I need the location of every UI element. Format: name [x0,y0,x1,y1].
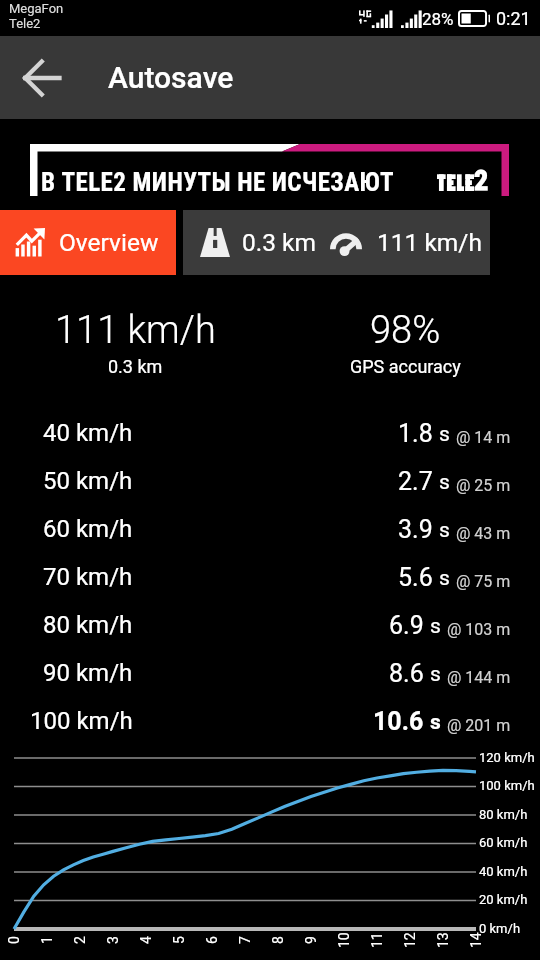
staticText: 100 km/h [479,778,535,793]
staticText: 70 km/h [43,563,133,591]
button[interactable]: 80 km/h [0,601,540,649]
button[interactable]: Back [10,46,74,110]
staticText: 9 [303,936,319,944]
staticText: 8.6 [389,659,424,688]
staticText: В TELE2 МИНУТЫ НЕ ИСЧЕЗАЮТ [41,168,395,197]
staticText: 28% [422,9,454,29]
button[interactable]: 40 km/h [0,409,540,457]
staticText: 12 [402,932,418,948]
staticText: 0.3 km [108,356,163,377]
staticText: s [439,518,450,543]
staticText: 0:21 [496,8,531,29]
button[interactable]: 50 km/h [0,457,540,505]
staticText: 2 [474,164,489,197]
staticText: 2 [72,936,88,944]
staticText: 0.3 km [242,228,316,257]
staticText: @ 103 m [447,620,511,639]
staticText: @ 75 m [456,572,511,591]
staticText: s [439,470,450,495]
staticText: 111 km/h [377,228,482,257]
staticText: 7 [237,936,253,944]
staticText: 0 [6,936,22,944]
staticText: Tele2 [9,16,41,31]
staticText: @ 144 m [447,668,511,687]
staticText: 11 [369,932,385,948]
staticText: s [439,422,450,447]
staticText: 90 km/h [43,659,133,687]
staticText: 6 [204,936,220,944]
staticText: MegaFon [9,1,64,16]
staticText: 120 km/h [479,750,535,765]
staticText: 100 km/h [30,707,133,735]
staticText: s [439,566,450,591]
staticText: 3.9 [398,515,433,544]
button[interactable]: В TELE2 МИНУТЫ НЕ ИСЧЕЗАЮТ [0,119,540,210]
button[interactable]: 90 km/h [0,649,540,697]
staticText: @ 43 m [456,524,511,543]
staticText: Overview [59,228,159,257]
staticText: GPS accuracy [350,356,461,377]
staticText: 4 [138,936,154,944]
button[interactable]: Overview [0,210,176,275]
staticText: 2.7 [398,467,433,496]
staticText: 80 km/h [43,611,133,639]
staticText: 20 km/h [479,892,528,907]
staticText: s [430,614,441,639]
staticText: 80 km/h [479,807,528,822]
staticText: 10.6 [373,707,424,736]
staticText: 60 km/h [479,835,528,850]
staticText: 60 km/h [43,515,133,543]
staticText: 50 km/h [43,467,133,495]
staticText: 1 [39,936,55,944]
staticText: 10 [336,932,352,948]
staticText: 3 [105,936,121,944]
staticText: s [430,662,441,687]
staticText: 111 km/h [55,308,216,353]
staticText: 13 [435,932,451,948]
staticText: s [430,710,441,735]
button[interactable]: 100 km/h [0,697,540,745]
staticText: 5.6 [398,563,433,592]
staticText: @ 14 m [456,428,511,447]
staticText: 5 [171,936,187,944]
staticText: 0 km/h [479,921,521,936]
staticText: 98% [370,308,441,353]
staticText: 40 km/h [479,864,528,879]
button[interactable]: 70 km/h [0,553,540,601]
staticText: 8 [270,936,286,944]
staticText: Autosave [108,60,234,95]
staticText: 6.9 [389,611,424,640]
staticText: 14 [468,932,484,948]
button[interactable]: 0.3 km [183,210,490,275]
staticText: 1.8 [398,419,433,448]
staticText: 40 km/h [43,419,133,447]
staticText: @ 25 m [456,476,511,495]
button[interactable]: 60 km/h [0,505,540,553]
staticText: @ 201 m [447,716,511,735]
